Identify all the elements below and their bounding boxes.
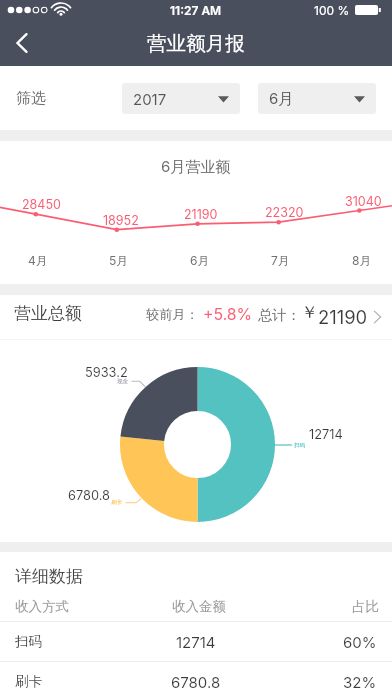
staticText: 2017 — [133, 90, 167, 108]
staticText: 32% — [343, 673, 377, 691]
staticText: 刷卡 — [111, 499, 123, 506]
staticText: 11:27 AM — [170, 3, 222, 18]
staticText: 7月 — [271, 253, 290, 268]
staticText: 6月 — [190, 253, 210, 268]
staticText: 31040 — [345, 194, 382, 209]
staticText: 21190 — [184, 207, 218, 222]
staticText: 扫码 — [294, 442, 306, 449]
staticText: 筛选 — [16, 89, 46, 108]
staticText: 营业额月报 — [147, 31, 245, 56]
staticText: 12714 — [176, 633, 216, 651]
staticText: 5月 — [109, 253, 129, 268]
staticText: 4月 — [28, 253, 48, 268]
staticText: 详细数据 — [15, 566, 83, 587]
button[interactable]: Back — [0, 20, 44, 66]
staticText: 12714 — [309, 427, 343, 442]
button[interactable]: 2017 — [122, 83, 240, 114]
staticText: 现金 — [117, 378, 129, 385]
staticText: 6780.8 — [171, 673, 221, 691]
button[interactable]: 扫码 — [0, 622, 392, 661]
staticText: ￥ — [301, 302, 318, 323]
button[interactable]: 刷卡 — [0, 662, 392, 696]
staticText: 占比 — [352, 598, 379, 615]
staticText: 21190 — [318, 306, 368, 328]
staticText: 6月营业额 — [161, 157, 231, 176]
staticText: 收入金额 — [172, 598, 226, 615]
staticText: 营业总额 — [14, 303, 82, 324]
button[interactable]: 营业总额 — [0, 295, 392, 340]
staticText: 28450 — [22, 197, 61, 212]
staticText: 8月 — [352, 253, 372, 268]
button[interactable]: 6月 — [258, 83, 376, 114]
staticText: 18952 — [103, 213, 139, 228]
staticText: 5933.2 — [85, 365, 128, 380]
staticText: 收入方式 — [15, 598, 69, 615]
staticText: 较前月： — [146, 306, 199, 323]
staticText: 6月 — [269, 89, 294, 108]
staticText: 60% — [343, 633, 377, 651]
staticText: +5.8% — [203, 305, 253, 324]
staticText: 22320 — [265, 205, 304, 220]
staticText: 刷卡 — [15, 673, 43, 690]
staticText: 扫码 — [15, 633, 43, 650]
staticText: 100 % — [314, 3, 350, 18]
staticText: 6780.8 — [68, 488, 110, 503]
staticText: 总计： — [258, 306, 301, 324]
